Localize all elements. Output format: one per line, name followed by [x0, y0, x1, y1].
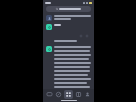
button[interactable]: Chat [45, 90, 54, 99]
button[interactable]: Profile [83, 90, 92, 99]
button[interactable] [46, 6, 91, 12]
button[interactable]: Explore [54, 90, 63, 99]
button[interactable]: Share [85, 34, 89, 38]
button[interactable]: Copy [79, 34, 83, 38]
button[interactable]: Library [74, 90, 83, 99]
button[interactable]: Apps [64, 90, 73, 99]
